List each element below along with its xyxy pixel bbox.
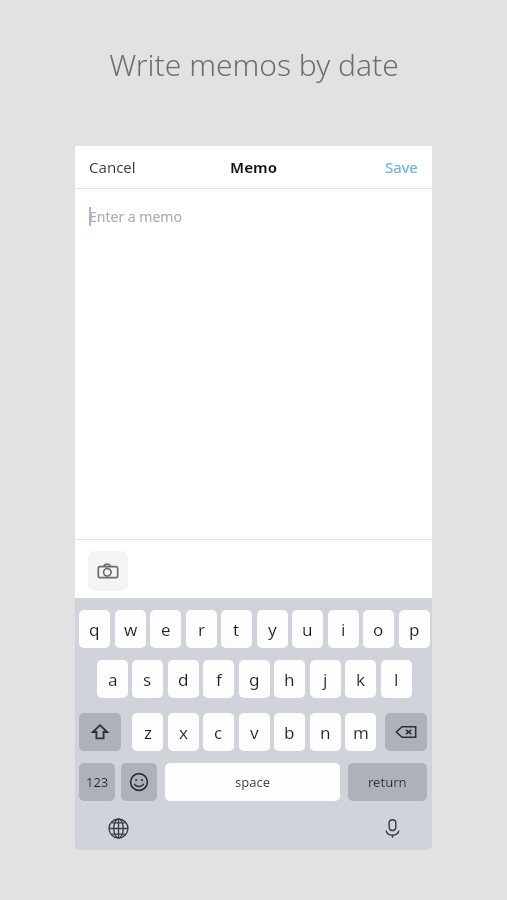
- staticText: b: [284, 721, 295, 744]
- staticText: y: [268, 618, 277, 641]
- button[interactable]: f: [203, 660, 234, 698]
- staticText: t: [233, 618, 240, 641]
- staticText: u: [302, 618, 313, 641]
- button[interactable]: g: [239, 660, 270, 698]
- button[interactable]: o: [363, 610, 394, 648]
- button[interactable]: z: [132, 713, 163, 751]
- button[interactable]: n: [310, 713, 341, 751]
- button[interactable]: t: [221, 610, 252, 648]
- staticText: h: [284, 668, 295, 691]
- staticText: Memo: [230, 157, 278, 177]
- button[interactable]: v: [239, 713, 270, 751]
- staticText: v: [250, 721, 259, 744]
- staticText: w: [124, 618, 138, 641]
- button[interactable]: m: [345, 713, 376, 751]
- staticText: f: [216, 668, 222, 691]
- staticText: g: [249, 668, 260, 691]
- button[interactable]: h: [274, 660, 305, 698]
- staticText: a: [108, 668, 118, 691]
- button[interactable]: return: [348, 763, 427, 801]
- staticText: Write memos by date: [109, 44, 399, 85]
- button[interactable]: i: [328, 610, 359, 648]
- button[interactable]: r: [186, 610, 217, 648]
- button[interactable]: u: [292, 610, 323, 648]
- button[interactable]: 123: [79, 763, 115, 801]
- staticText: n: [320, 721, 331, 744]
- staticText: return: [368, 773, 407, 791]
- staticText: q: [89, 618, 100, 641]
- staticText: e: [161, 618, 171, 641]
- button[interactable]: b: [274, 713, 305, 751]
- button[interactable]: s: [132, 660, 163, 698]
- button[interactable]: a: [97, 660, 128, 698]
- button[interactable]: l: [381, 660, 412, 698]
- staticText: z: [144, 721, 152, 744]
- button[interactable]: Change keyboard: [103, 813, 133, 843]
- button[interactable]: Emoji: [121, 763, 157, 801]
- staticText: p: [409, 618, 420, 641]
- staticText: 123: [86, 773, 109, 791]
- button[interactable]: space: [165, 763, 340, 801]
- button[interactable]: Attach photo: [88, 551, 128, 591]
- button[interactable]: p: [399, 610, 430, 648]
- staticText: Cancel: [89, 157, 136, 177]
- staticText: space: [235, 773, 271, 791]
- button[interactable]: d: [168, 660, 199, 698]
- staticText: k: [356, 668, 366, 691]
- staticText: c: [214, 721, 223, 744]
- staticText: l: [394, 668, 399, 691]
- staticText: m: [353, 721, 369, 744]
- button[interactable]: c: [203, 713, 234, 751]
- button[interactable]: Save: [377, 151, 426, 183]
- button[interactable]: Cancel: [81, 151, 144, 183]
- button[interactable]: q: [79, 610, 110, 648]
- staticText: r: [198, 618, 206, 641]
- staticText: Enter a memo: [89, 207, 182, 226]
- staticText: Save: [385, 157, 418, 177]
- button[interactable]: Backspace: [385, 713, 427, 751]
- staticText: x: [179, 721, 188, 744]
- staticText: o: [373, 618, 384, 641]
- staticText: s: [143, 668, 152, 691]
- button[interactable]: Shift: [79, 713, 121, 751]
- button[interactable]: y: [257, 610, 288, 648]
- staticText: i: [341, 618, 346, 641]
- button[interactable]: w: [115, 610, 146, 648]
- button[interactable]: j: [310, 660, 341, 698]
- staticText: d: [178, 668, 189, 691]
- button[interactable]: x: [168, 713, 199, 751]
- button[interactable]: Dictate: [377, 813, 407, 843]
- button[interactable]: k: [345, 660, 376, 698]
- button[interactable]: e: [150, 610, 181, 648]
- staticText: j: [323, 668, 328, 691]
